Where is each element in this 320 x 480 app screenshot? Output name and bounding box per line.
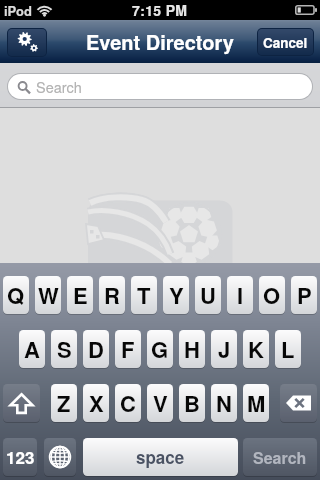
- button[interactable]: Search: [8, 74, 312, 99]
- staticText: Search: [253, 446, 307, 469]
- button[interactable]: L: [275, 330, 301, 368]
- staticText: I: [237, 279, 244, 311]
- staticText: 123: [6, 445, 35, 469]
- staticText: iPod: [4, 1, 32, 20]
- button[interactable]: Delete: [280, 384, 317, 422]
- staticText: H: [184, 333, 200, 365]
- button[interactable]: F: [115, 330, 141, 368]
- button[interactable]: space: [83, 438, 238, 476]
- button[interactable]: C: [115, 384, 141, 422]
- button[interactable]: A: [19, 330, 45, 368]
- staticText: L: [281, 333, 295, 365]
- button[interactable]: Search: [243, 438, 317, 476]
- button[interactable]: H: [179, 330, 205, 368]
- button[interactable]: B: [179, 384, 205, 422]
- button[interactable]: Y: [163, 276, 189, 314]
- button[interactable]: Cancel: [258, 29, 313, 55]
- staticText: U: [200, 279, 216, 311]
- button[interactable]: V: [147, 384, 173, 422]
- staticText: C: [120, 387, 136, 419]
- button[interactable]: E: [67, 276, 93, 314]
- button[interactable]: R: [99, 276, 125, 314]
- staticText: F: [121, 333, 135, 365]
- staticText: P: [297, 279, 312, 311]
- button[interactable]: O: [259, 276, 285, 314]
- staticText: Cancel: [263, 33, 308, 52]
- button[interactable]: Q: [3, 276, 29, 314]
- staticText: O: [263, 279, 281, 311]
- button[interactable]: P: [291, 276, 317, 314]
- button[interactable]: K: [243, 330, 269, 368]
- button[interactable]: Next keyboard: [44, 438, 76, 476]
- staticText: K: [248, 333, 264, 365]
- button[interactable]: Z: [51, 384, 77, 422]
- button[interactable]: T: [131, 276, 157, 314]
- staticText: B: [184, 387, 200, 419]
- staticText: V: [153, 387, 168, 419]
- staticText: Event Directory: [86, 27, 234, 56]
- staticText: Search: [36, 76, 82, 97]
- button[interactable]: J: [211, 330, 237, 368]
- button[interactable]: D: [83, 330, 109, 368]
- button[interactable]: N: [211, 384, 237, 422]
- staticText: N: [216, 387, 232, 419]
- staticText: space: [136, 445, 185, 469]
- staticText: R: [104, 279, 120, 311]
- staticText: S: [57, 333, 72, 365]
- button[interactable]: X: [83, 384, 109, 422]
- button[interactable]: S: [51, 330, 77, 368]
- staticText: 7:15 PM: [132, 0, 188, 20]
- button[interactable]: Settings: [8, 29, 46, 56]
- staticText: D: [88, 333, 104, 365]
- staticText: Z: [57, 387, 71, 419]
- staticText: G: [151, 333, 169, 365]
- staticText: X: [89, 387, 104, 419]
- staticText: E: [73, 279, 88, 311]
- staticText: J: [218, 333, 231, 365]
- button[interactable]: U: [195, 276, 221, 314]
- button[interactable]: W: [35, 276, 61, 314]
- button[interactable]: G: [147, 330, 173, 368]
- staticText: A: [24, 333, 40, 365]
- button[interactable]: Shift: [3, 384, 40, 422]
- staticText: M: [247, 387, 266, 419]
- staticText: W: [38, 279, 59, 311]
- staticText: Y: [169, 279, 184, 311]
- staticText: Q: [7, 279, 25, 311]
- button[interactable]: I: [227, 276, 253, 314]
- button[interactable]: Numbers: [3, 438, 37, 476]
- staticText: T: [137, 279, 151, 311]
- button[interactable]: M: [243, 384, 269, 422]
